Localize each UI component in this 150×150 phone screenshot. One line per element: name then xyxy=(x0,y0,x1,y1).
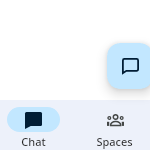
staticText: Chat xyxy=(0,134,67,149)
staticText: Spaces xyxy=(81,134,148,149)
button[interactable]: New chat xyxy=(107,43,150,89)
button[interactable]: Spaces xyxy=(81,100,148,150)
button[interactable]: Chat xyxy=(0,100,67,150)
